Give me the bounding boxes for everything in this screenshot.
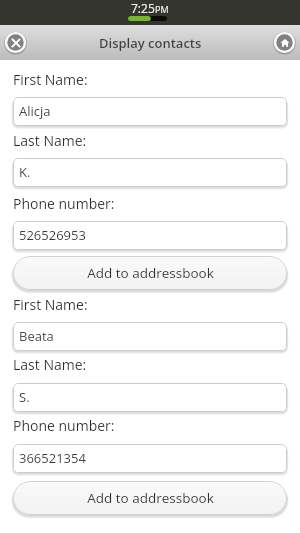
staticText: First Name: — [13, 295, 88, 314]
button[interactable]: Alicja — [13, 97, 287, 126]
button[interactable]: Add to addressbook — [13, 481, 287, 515]
button[interactable]: Close — [2, 29, 29, 56]
staticText: Phone number: — [13, 416, 115, 435]
button[interactable]: Add to addressbook — [13, 256, 287, 290]
staticText: Phone number: — [13, 194, 115, 213]
button[interactable]: Beata — [13, 322, 287, 351]
staticText: First Name: — [13, 70, 88, 89]
staticText: Last Name: — [13, 355, 87, 374]
button[interactable]: K. — [13, 158, 287, 187]
staticText: PM — [155, 3, 169, 15]
button[interactable]: S. — [13, 383, 287, 412]
staticText: Add to addressbook — [87, 264, 214, 282]
staticText: Display contacts — [99, 34, 202, 52]
staticText: K. — [19, 163, 31, 181]
staticText: Alicja — [19, 102, 51, 120]
staticText: 366521354 — [19, 449, 86, 467]
staticText: Add to addressbook — [87, 489, 214, 507]
button[interactable]: Home — [271, 29, 298, 56]
staticText: Last Name: — [13, 131, 87, 150]
button[interactable]: 366521354 — [13, 444, 287, 473]
staticText: S. — [19, 388, 30, 406]
staticText: 526526953 — [19, 226, 86, 244]
staticText: 7:25 — [131, 0, 155, 16]
button[interactable]: 526526953 — [13, 221, 287, 250]
staticText: Beata — [19, 327, 54, 345]
